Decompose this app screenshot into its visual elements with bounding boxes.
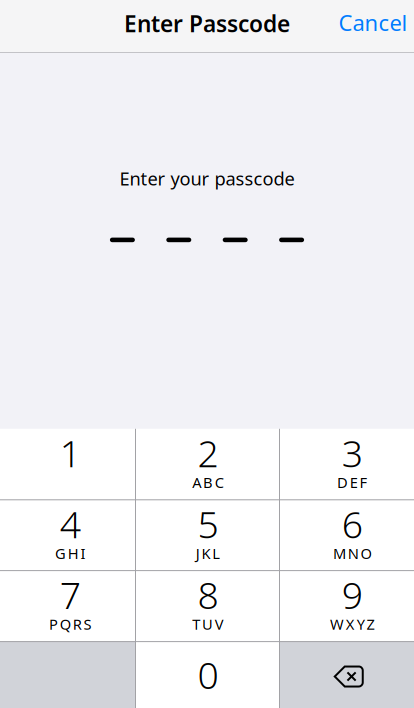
- staticText: 9: [342, 570, 363, 619]
- staticText: PQRS: [49, 614, 91, 634]
- button[interactable]: 0: [135, 642, 279, 708]
- staticText: 6: [342, 499, 363, 549]
- staticText: 8: [197, 570, 218, 619]
- staticText: ABC: [192, 473, 224, 492]
- staticText: Enter Passcode: [124, 8, 290, 38]
- staticText: MNO: [333, 544, 372, 563]
- staticText: TUV: [192, 614, 224, 634]
- button[interactable]: Blank: [0, 642, 135, 708]
- staticText: DEF: [337, 473, 368, 492]
- staticText: 0: [197, 650, 218, 699]
- staticText: 2: [197, 428, 218, 478]
- button[interactable]: 8: [135, 571, 279, 642]
- button[interactable]: 3: [279, 429, 414, 500]
- button[interactable]: 4: [0, 500, 135, 571]
- staticText: WXYZ: [330, 614, 374, 634]
- button[interactable]: 1: [0, 429, 135, 500]
- button[interactable]: Delete: [279, 642, 414, 708]
- staticText: Enter your passcode: [119, 166, 294, 191]
- staticText: 1: [60, 428, 81, 478]
- staticText: 4: [60, 499, 81, 549]
- button[interactable]: 6: [279, 500, 414, 571]
- staticText: Cancel: [338, 7, 407, 37]
- button[interactable]: 2: [135, 429, 279, 500]
- button[interactable]: 5: [135, 500, 279, 571]
- staticText: GHI: [55, 544, 86, 563]
- button[interactable]: 7: [0, 571, 135, 642]
- staticText: 3: [342, 428, 363, 478]
- staticText: JKL: [196, 544, 220, 563]
- staticText: 7: [60, 570, 81, 619]
- button[interactable]: 9: [279, 571, 414, 642]
- staticText: 5: [197, 499, 218, 549]
- button[interactable]: Cancel: [322, 0, 414, 50]
